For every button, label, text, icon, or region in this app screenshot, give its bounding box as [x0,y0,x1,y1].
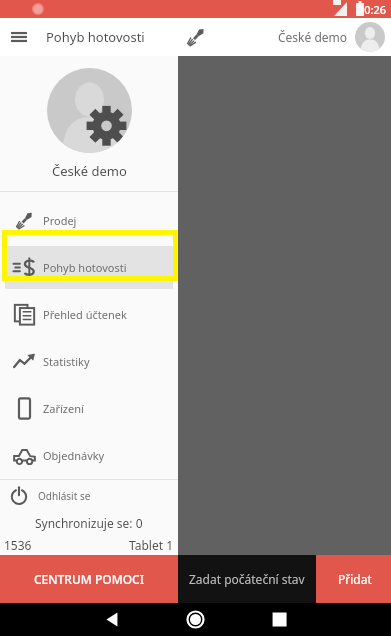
button[interactable]: Přehled účtenek [5,293,173,336]
staticText: Synchronizuje se: 0 [35,515,143,531]
button[interactable]: CENTRUM POMOCI [0,555,178,603]
staticText: Tablet 1 [129,537,174,553]
staticText: České demo [278,29,348,45]
staticText: 1536 [4,537,32,553]
staticText: Zařízení [43,401,84,416]
button[interactable]: Open navigation drawer [0,18,38,56]
button[interactable]: Odhlásit se [0,480,178,512]
staticText: Odhlásit se [38,489,91,503]
button[interactable]: Objednávky [5,434,173,477]
button[interactable]: Prodej [5,199,173,242]
staticText: Přidat počáteční [338,571,391,587]
button[interactable]: Pohyb hotovosti [5,246,173,289]
staticText: CENTRUM POMOCI [34,571,144,587]
staticText: 10:26 [358,2,387,17]
staticText: Pohyb hotovosti [46,28,145,46]
staticText: Přehled účtenek [43,307,127,322]
staticText: Pohyb hotovosti [43,260,127,275]
button[interactable]: Account [355,22,385,52]
button[interactable]: Account settings [47,68,132,153]
button[interactable]: Přidat počáteční [316,555,391,603]
button[interactable]: Zařízení [5,387,173,430]
staticText: Objednávky [43,448,105,463]
staticText: České demo [52,162,127,180]
button[interactable]: Zadat počáteční stav [178,555,316,603]
button[interactable]: Prodej [177,18,215,56]
staticText: Prodej [43,213,77,228]
staticText: Zadat počáteční stav [189,571,305,587]
staticText: Statistiky [43,354,90,369]
button[interactable]: Statistiky [5,340,173,383]
